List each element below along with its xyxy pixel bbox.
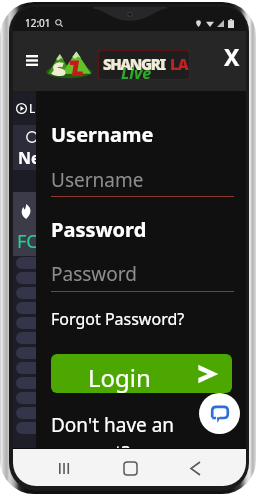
button[interactable] <box>16 377 246 389</box>
button[interactable] <box>16 302 246 314</box>
button[interactable]: Close <box>220 41 244 71</box>
button[interactable]: Login <box>51 354 232 393</box>
staticText: Ne <box>18 147 41 169</box>
staticText: Forgot Password? <box>51 308 185 330</box>
staticText: Username <box>51 167 144 193</box>
staticText: L <box>29 100 36 116</box>
staticText: Password <box>51 261 137 287</box>
button[interactable]: Menu <box>21 46 43 74</box>
button[interactable]: Back <box>180 453 210 483</box>
staticText: SHANGRI <box>103 54 165 74</box>
staticText: Username <box>51 121 154 148</box>
staticText: X <box>224 41 240 71</box>
button[interactable]: Forgot Password? <box>51 308 185 330</box>
button[interactable]: Recents <box>49 453 79 483</box>
button[interactable] <box>16 287 246 299</box>
button[interactable] <box>16 332 246 344</box>
staticText: Login <box>88 361 151 393</box>
button[interactable] <box>16 407 246 419</box>
button[interactable] <box>16 422 246 434</box>
button[interactable]: Chat support <box>199 393 240 434</box>
button[interactable] <box>16 392 246 404</box>
button[interactable] <box>16 347 246 359</box>
button[interactable]: Don't have an account? <box>51 412 175 448</box>
staticText: Live <box>121 62 152 79</box>
staticText: FC <box>17 229 38 254</box>
staticText: LA <box>170 54 188 74</box>
button[interactable] <box>16 272 246 284</box>
staticText: Password <box>51 216 147 243</box>
staticText: 12:01 <box>25 16 51 30</box>
button[interactable] <box>16 362 246 374</box>
button[interactable] <box>16 257 246 269</box>
button[interactable] <box>16 317 246 329</box>
button[interactable]: Home <box>115 453 145 483</box>
staticText: Don't have an account? <box>51 412 175 448</box>
